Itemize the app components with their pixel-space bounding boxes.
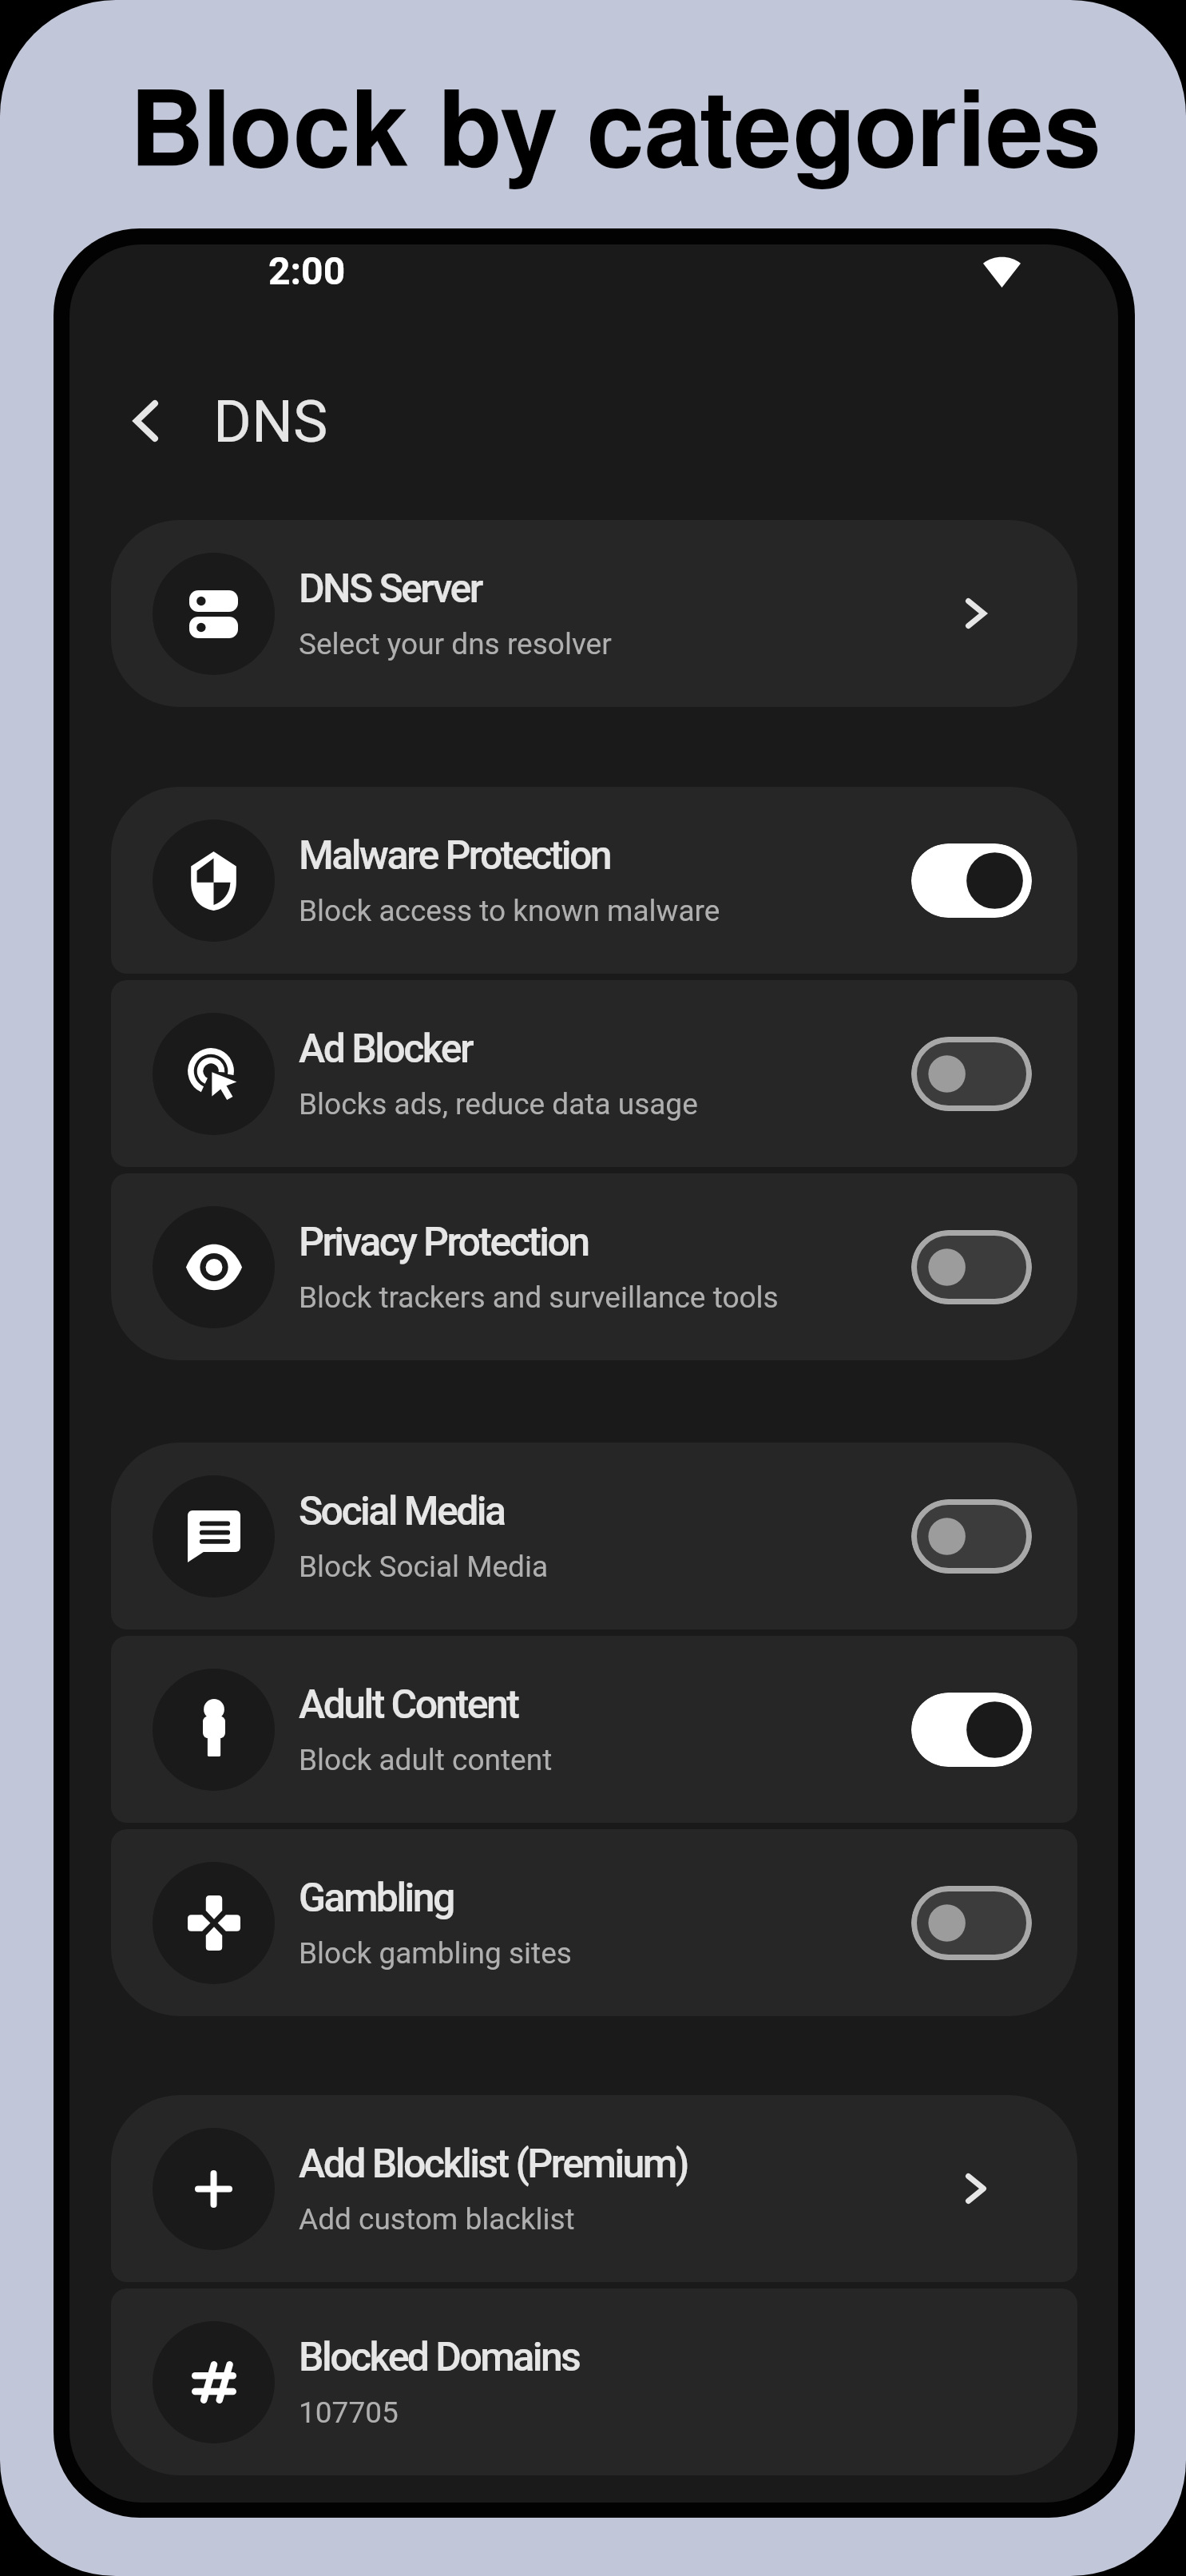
staticText: Blocked Domains <box>299 2334 580 2381</box>
button[interactable]: Add Blocklist (Premium) <box>111 2095 1077 2282</box>
button[interactable]: Switch off <box>911 1037 1032 1111</box>
button[interactable]: Social Media <box>111 1443 1077 1629</box>
staticText: Privacy Protection <box>299 1219 589 1266</box>
button[interactable]: Privacy Protection <box>111 1173 1077 1360</box>
staticText: Block Social Media <box>299 1550 549 1584</box>
other: Wi-Fi <box>982 255 1021 288</box>
button[interactable]: Switch off <box>911 1886 1032 1960</box>
staticText: Social Media <box>299 1488 505 1535</box>
button[interactable]: Malware Protection <box>111 787 1077 974</box>
staticText: Block access to known malware <box>299 894 720 928</box>
staticText: Block by categories <box>22 83 1186 187</box>
staticText: Blocks ads, reduce data usage <box>299 1087 698 1121</box>
staticText: 107705 <box>299 2395 399 2430</box>
button[interactable]: Switch on <box>911 843 1032 918</box>
button[interactable]: Ad Blocker <box>111 980 1077 1167</box>
button[interactable]: Blocked Domains <box>111 2288 1077 2475</box>
button[interactable]: Switch on <box>911 1693 1032 1767</box>
staticText: Malware Protection <box>299 832 611 879</box>
staticText: DNS Server <box>299 566 482 613</box>
staticText: Gambling <box>299 1875 454 1922</box>
button[interactable]: Gambling <box>111 1829 1077 2016</box>
staticText: Add custom blacklist <box>299 2202 575 2237</box>
button[interactable]: Open <box>940 2153 1012 2225</box>
staticText: Block gambling sites <box>299 1936 572 1971</box>
staticText: Add Blocklist (Premium) <box>299 2141 688 2188</box>
staticText: Ad Blocker <box>299 1026 473 1073</box>
staticText: Adult Content <box>299 1681 518 1729</box>
button[interactable]: Back <box>109 385 181 457</box>
button[interactable]: Adult Content <box>111 1636 1077 1823</box>
staticText: 2:00 <box>268 248 346 293</box>
button[interactable]: Switch off <box>911 1230 1032 1304</box>
staticText: Select your dns resolver <box>299 627 612 661</box>
staticText: DNS <box>213 387 328 456</box>
staticText: Block adult content <box>299 1743 553 1777</box>
button[interactable]: Switch off <box>911 1499 1032 1574</box>
staticText: Block trackers and surveillance tools <box>299 1280 779 1315</box>
button[interactable]: DNS Server <box>111 520 1077 707</box>
button[interactable]: Open <box>940 578 1012 649</box>
